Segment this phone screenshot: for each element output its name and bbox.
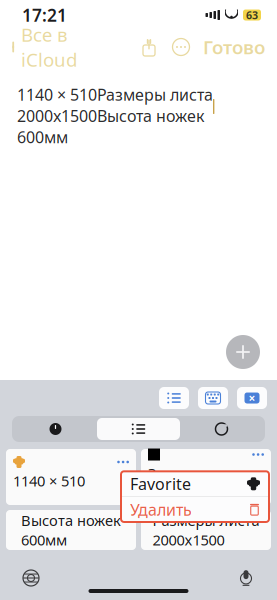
staticText: Удалить: [130, 499, 192, 520]
button[interactable]: Удалить: [121, 497, 269, 522]
button[interactable]: Готово: [197, 29, 277, 65]
button[interactable]: More options: [165, 32, 197, 62]
button[interactable]: All items: [97, 418, 180, 440]
button[interactable]: Delete: [237, 387, 267, 409]
button[interactable]: Зная азимут, определить: [141, 449, 271, 505]
button[interactable]: Все в iCloud: [0, 16, 83, 78]
staticText: 17:21: [22, 3, 67, 26]
button[interactable]: Share: [133, 32, 165, 62]
button[interactable]: Recent: [14, 418, 97, 440]
button[interactable]: 1140 × 510: [6, 449, 136, 505]
staticText: Готово: [203, 35, 265, 59]
staticText: 1140 × 510: [13, 471, 85, 490]
button[interactable]: Change keyboard language: [14, 563, 48, 593]
staticText: Размеры листа 2000x1500: [152, 510, 259, 549]
button[interactable]: Favorite: [121, 471, 269, 496]
staticText: Зная азимут, определить: [148, 463, 237, 502]
staticText: Favorite: [130, 473, 191, 494]
button[interactable]: Keyboard: [198, 387, 228, 409]
staticText: 63: [246, 8, 258, 22]
button[interactable]: Dictate: [229, 563, 263, 593]
button[interactable]: Sync: [180, 418, 263, 440]
button[interactable]: Размеры листа 2000x1500: [141, 510, 271, 550]
staticText: Все в iCloud: [21, 22, 77, 72]
staticText: Высота ножек 600мм: [21, 510, 121, 549]
staticText: ×: [248, 390, 255, 406]
button[interactable]: Высота ножек 600мм: [6, 510, 136, 550]
staticText: 1140 × 510Размеры листа 2000x1500Высота …: [17, 84, 213, 148]
button[interactable]: Checklist: [159, 387, 189, 409]
button[interactable]: Add: [223, 332, 263, 372]
